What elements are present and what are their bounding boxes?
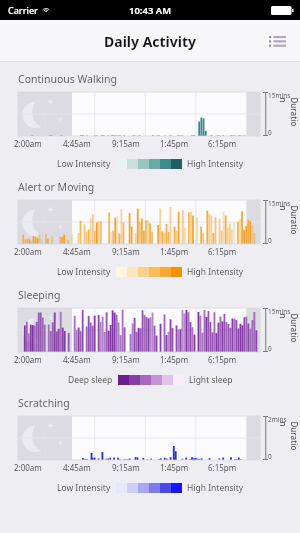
staticText: Continuous Walking: [18, 72, 117, 86]
staticText: 15mins: [268, 307, 291, 316]
staticText: 6:15pm: [208, 354, 237, 365]
staticText: Daily Activity: [104, 32, 197, 51]
staticText: High Intensity: [187, 158, 244, 170]
staticText: 0: [268, 236, 272, 245]
staticText: 1:45pm: [160, 462, 189, 473]
staticText: High Intensity: [187, 482, 244, 494]
staticText: 9:15am: [112, 462, 140, 473]
staticText: 4:45am: [63, 246, 91, 257]
staticText: 6:15pm: [208, 138, 237, 149]
staticText: 2:00am: [14, 462, 42, 473]
staticText: Low Intensity: [57, 482, 111, 494]
staticText: 4:45am: [63, 138, 91, 149]
staticText: Deep sleep: [68, 374, 113, 386]
staticText: Low Intensity: [57, 266, 111, 278]
staticText: 0: [268, 344, 272, 353]
staticText: 15mins: [268, 199, 291, 208]
staticText: 9:15am: [112, 138, 140, 149]
staticText: 0: [268, 452, 272, 461]
staticText: 2:00am: [14, 354, 42, 365]
staticText: 6:15pm: [208, 462, 237, 473]
staticText: Alert or Moving: [18, 180, 95, 194]
staticText: 15mins: [268, 91, 291, 100]
staticText: Scratching: [18, 396, 70, 410]
staticText: 1:45pm: [160, 354, 189, 365]
staticText: 9:15am: [112, 246, 140, 257]
staticText: 2mins: [268, 415, 287, 424]
staticText: Sleeping: [18, 288, 61, 302]
staticText: Carrier: [8, 4, 38, 16]
staticText: High Intensity: [187, 266, 244, 278]
staticText: 1:45pm: [160, 246, 189, 257]
staticText: 4:45am: [63, 462, 91, 473]
staticText: Duration: [277, 421, 299, 454]
staticText: 2:00am: [14, 246, 42, 257]
staticText: Duration: [277, 205, 299, 238]
staticText: Duration: [277, 97, 299, 130]
staticText: 10:43 AM: [129, 4, 172, 17]
staticText: Light sleep: [189, 374, 233, 386]
staticText: 0: [268, 128, 272, 137]
button[interactable]: Menu: [262, 26, 292, 56]
staticText: 6:15pm: [208, 246, 237, 257]
staticText: 1:45pm: [160, 138, 189, 149]
staticText: Duration: [277, 313, 299, 346]
staticText: Low Intensity: [57, 158, 111, 170]
staticText: 4:45am: [63, 354, 91, 365]
staticText: 2:00am: [14, 138, 42, 149]
staticText: 9:15am: [112, 354, 140, 365]
